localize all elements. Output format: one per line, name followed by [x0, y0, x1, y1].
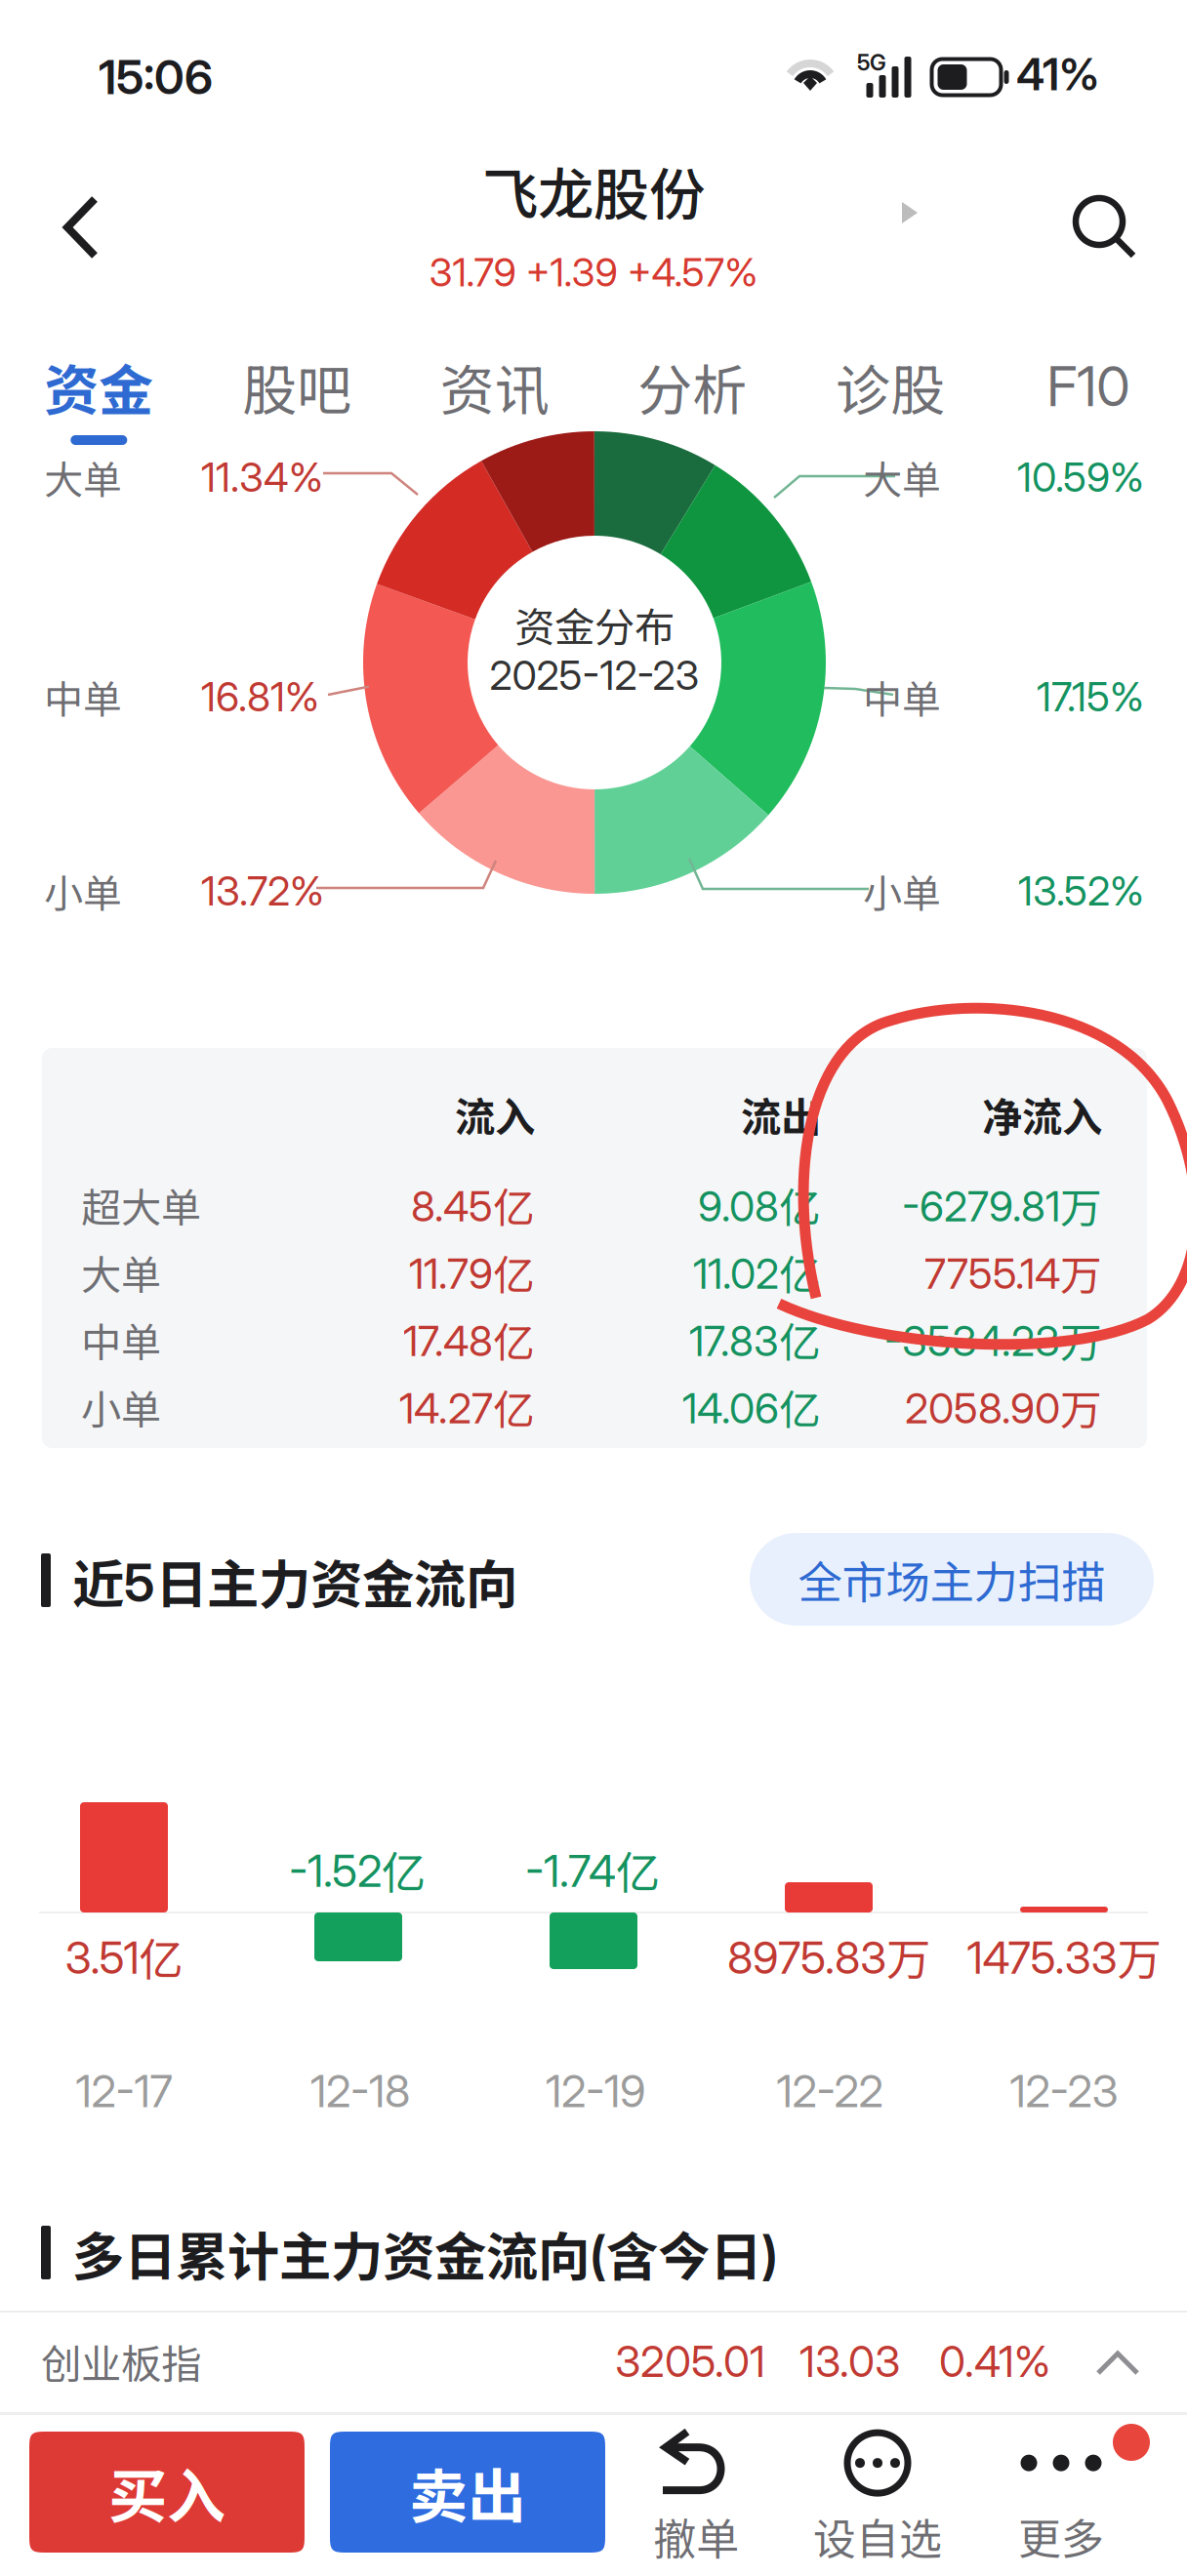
staticText: 流入 [455, 1085, 535, 1144]
staticText: 13.72% [201, 866, 324, 915]
staticText: 13.03 [799, 2335, 900, 2387]
staticText: 7755.14万 [924, 1242, 1102, 1303]
button[interactable]: 撤单 [603, 2426, 789, 2568]
staticText: 9.08亿 [698, 1175, 821, 1235]
staticText: 净流入 [982, 1085, 1102, 1144]
staticText: 0.41% [939, 2335, 1050, 2387]
staticText: 资讯 [440, 347, 549, 426]
staticText: 31.79 +1.39 +4.57% [429, 249, 758, 296]
staticText: 分析 [638, 347, 747, 426]
staticText: 大单 [863, 449, 941, 505]
staticText: 小单 [81, 1378, 161, 1436]
button[interactable]: 创业板指 [0, 2314, 1187, 2412]
staticText: 3205.01 [615, 2335, 765, 2387]
button[interactable]: 资金 [0, 322, 198, 459]
button[interactable]: 搜索 [1051, 177, 1159, 278]
staticText: 股吧 [242, 347, 351, 426]
button[interactable]: 返回 [29, 177, 137, 278]
staticText: 资金分布 [514, 595, 675, 654]
button[interactable]: 诊股 [791, 322, 989, 459]
staticText: 11.34% [201, 453, 323, 502]
button[interactable]: F10 [989, 322, 1187, 459]
staticText: 12-18 [310, 2064, 410, 2118]
staticText: 17.15% [1037, 672, 1144, 721]
staticText: 41% [1016, 47, 1099, 101]
staticText: 小单 [44, 863, 122, 919]
button[interactable]: 更多 [968, 2426, 1154, 2568]
staticText: 超大单 [81, 1176, 201, 1234]
staticText: 17.83亿 [689, 1310, 821, 1370]
staticText: 飞龙股份 [482, 150, 705, 231]
staticText: 多日累计主力资金流向(含今日) [72, 2215, 778, 2291]
staticText: 中单 [863, 668, 941, 725]
staticText: 2058.90万 [905, 1377, 1102, 1437]
button[interactable]: 分析 [593, 322, 791, 459]
staticText: 17.48亿 [403, 1310, 535, 1370]
staticText: 中单 [44, 668, 122, 725]
staticText: 10.59% [1017, 453, 1144, 502]
staticText: 大单 [44, 449, 122, 505]
staticText: 5G [857, 49, 886, 76]
staticText: 11.79亿 [409, 1242, 535, 1303]
staticText: 中单 [81, 1311, 161, 1369]
staticText: 3.51亿 [65, 1924, 183, 1988]
staticText: -6279.81万 [902, 1175, 1102, 1235]
staticText: 流出 [741, 1085, 821, 1144]
staticText: 买入 [108, 2450, 225, 2535]
staticText: 12-19 [546, 2064, 645, 2118]
staticText: 小单 [863, 863, 941, 919]
staticText: 11.02亿 [693, 1242, 821, 1303]
button[interactable]: 股吧 [198, 322, 396, 459]
button[interactable]: 全市场主力扫描 [750, 1533, 1154, 1626]
staticText: 16.81% [201, 672, 319, 721]
staticText: 近5日主力资金流向 [72, 1543, 517, 1618]
button[interactable]: 卖出 [330, 2432, 605, 2553]
staticText: 15:06 [99, 49, 213, 105]
staticText: 12-22 [777, 2064, 883, 2118]
staticText: 2025-12-23 [490, 651, 699, 700]
staticText: 资金 [44, 347, 154, 426]
staticText: 13.52% [1018, 866, 1144, 915]
staticText: 创业板指 [41, 2332, 201, 2391]
staticText: 12-17 [76, 2064, 172, 2118]
staticText: 14.06亿 [682, 1377, 821, 1437]
staticText: 1475.33万 [967, 1924, 1161, 1988]
staticText: 全市场主力扫描 [798, 1547, 1105, 1611]
staticText: -3534.23万 [884, 1310, 1102, 1370]
button[interactable]: 资讯 [396, 322, 593, 459]
staticText: 大单 [81, 1243, 161, 1302]
staticText: 8.45亿 [411, 1175, 535, 1235]
staticText: 12-23 [1010, 2064, 1118, 2118]
staticText: 诊股 [836, 347, 945, 426]
button[interactable]: 买入 [29, 2432, 305, 2553]
staticText: 更多 [1018, 2505, 1104, 2567]
staticText: 撤单 [653, 2505, 739, 2567]
staticText: 8975.83万 [727, 1924, 930, 1988]
staticText: F10 [1047, 353, 1130, 419]
staticText: 14.27亿 [399, 1377, 535, 1437]
staticText: -1.74亿 [525, 1838, 660, 1902]
staticText: -1.52亿 [289, 1838, 426, 1902]
staticText: 设自选 [813, 2505, 942, 2567]
button[interactable]: 设自选 [785, 2426, 970, 2568]
staticText: 卖出 [409, 2450, 526, 2535]
